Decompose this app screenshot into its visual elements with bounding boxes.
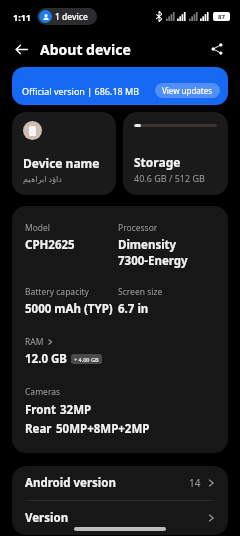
button[interactable]: Share xyxy=(204,36,230,62)
staticText: داؤد ابراہیم xyxy=(23,173,62,184)
staticText: Dimensity xyxy=(118,237,177,253)
staticText: 1 device xyxy=(55,11,88,23)
button[interactable]: Back xyxy=(8,36,34,62)
staticText: 6.7 in xyxy=(118,301,149,317)
button[interactable]: Device name xyxy=(12,112,116,195)
staticText: 87 xyxy=(218,13,225,21)
staticText: View updates xyxy=(162,85,213,96)
staticText: Device name xyxy=(23,155,100,171)
staticText: 1:11 xyxy=(13,11,31,23)
staticText: Front xyxy=(25,402,56,418)
staticText: 14 xyxy=(189,476,201,490)
staticText: Battery capacity xyxy=(25,286,89,298)
staticText: 40.6 GB / 512 GB xyxy=(134,172,205,184)
button[interactable]: 1 device xyxy=(37,8,97,25)
button[interactable]: Storage xyxy=(123,112,228,195)
staticText: Storage xyxy=(134,154,181,170)
staticText: Android version xyxy=(25,475,116,491)
staticText: Rear xyxy=(25,421,52,437)
staticText: + 4.00 GB xyxy=(74,356,99,363)
staticText: RAM xyxy=(25,336,44,348)
staticText: Screen size xyxy=(118,286,163,298)
staticText: Cameras xyxy=(25,386,61,398)
staticText: 5000 mAh (TYP) xyxy=(25,301,113,317)
staticText: 32MP xyxy=(60,402,92,418)
button[interactable]: View updates xyxy=(155,83,220,98)
staticText: Official version | 686.18 MB xyxy=(22,85,140,97)
staticText: About device xyxy=(40,40,131,59)
staticText: 50MP+8MP+2MP xyxy=(56,421,150,437)
button[interactable]: Official version | 686.18 MB xyxy=(12,67,228,105)
staticText: Version xyxy=(25,510,69,526)
staticText: Model xyxy=(25,222,51,234)
staticText: 12.0 GB xyxy=(25,351,67,367)
button[interactable]: Android version xyxy=(12,466,228,500)
button[interactable]: Version xyxy=(12,501,228,535)
staticText: Processor xyxy=(118,222,158,234)
staticText: 7300-Energy xyxy=(118,253,188,269)
staticText: CPH2625 xyxy=(25,237,75,253)
